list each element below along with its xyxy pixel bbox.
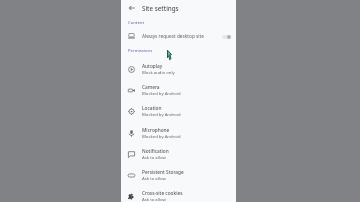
- button[interactable]: Notification: [121, 143, 236, 164]
- staticText: Ask to allow: [142, 154, 166, 160]
- staticText: Blocked by Android: [142, 90, 181, 96]
- staticText: Blocked by Android: [142, 133, 181, 139]
- button[interactable]: Persistent Storage: [121, 164, 236, 185]
- staticText: Notification: [142, 148, 169, 154]
- button[interactable]: Microphone: [121, 122, 236, 143]
- staticText: Location: [142, 105, 162, 111]
- staticText: Site settings: [142, 4, 179, 13]
- staticText: Always request desktop site: [142, 33, 204, 39]
- staticText: Persistent Storage: [142, 169, 184, 175]
- button[interactable]: Back: [124, 0, 140, 16]
- staticText: Camera: [142, 84, 160, 90]
- staticText: Ask to allow: [142, 196, 166, 202]
- staticText: Permissions: [128, 48, 153, 54]
- button[interactable]: Cross-site cookies: [121, 185, 236, 202]
- staticText: Ask to allow: [142, 175, 166, 181]
- staticText: Microphone: [142, 127, 170, 133]
- staticText: Block audio only: [142, 69, 175, 75]
- button[interactable]: Autoplay: [121, 58, 236, 79]
- staticText: Autoplay: [142, 63, 163, 69]
- staticText: Cross-site cookies: [142, 190, 183, 196]
- staticText: Content: [128, 20, 145, 26]
- button[interactable]: Always request desktop site: [121, 28, 236, 43]
- button[interactable]: Location: [121, 100, 236, 121]
- staticText: Blocked by Android: [142, 111, 181, 117]
- button[interactable]: Camera: [121, 79, 236, 100]
- button[interactable]: Always request desktop site toggle: [222, 34, 231, 39]
